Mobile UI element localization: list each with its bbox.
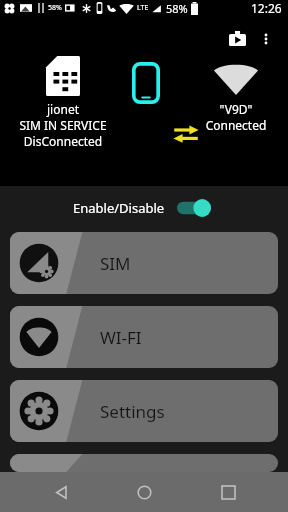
staticText: WI-FI: [100, 326, 142, 349]
staticText: SIM: [100, 252, 131, 275]
staticText: 58%: [166, 1, 188, 16]
staticText: SIM IN SERVICE: [8, 117, 118, 133]
button[interactable]: Recent apps: [205, 472, 251, 512]
staticText: Connected: [186, 117, 286, 133]
staticText: Settings: [100, 400, 165, 423]
button[interactable]: [10, 454, 278, 472]
button[interactable]: Home: [121, 472, 167, 512]
staticText: DisConnected: [8, 133, 118, 149]
staticText: 58%: [48, 3, 62, 13]
button[interactable]: WI-FI: [10, 306, 278, 368]
button[interactable]: More options: [252, 25, 280, 53]
staticText: LTE: [137, 3, 149, 13]
button[interactable]: Back: [38, 472, 84, 512]
staticText: "V9D": [186, 101, 286, 117]
button[interactable]: Enable or disable toggle: [175, 196, 215, 220]
button[interactable]: Play Store: [222, 24, 252, 54]
button[interactable]: Settings: [10, 380, 278, 442]
staticText: jionet: [8, 101, 118, 117]
staticText: 12:26: [251, 0, 282, 16]
staticText: Enable/Disable: [73, 199, 165, 217]
button[interactable]: SIM: [10, 232, 278, 294]
